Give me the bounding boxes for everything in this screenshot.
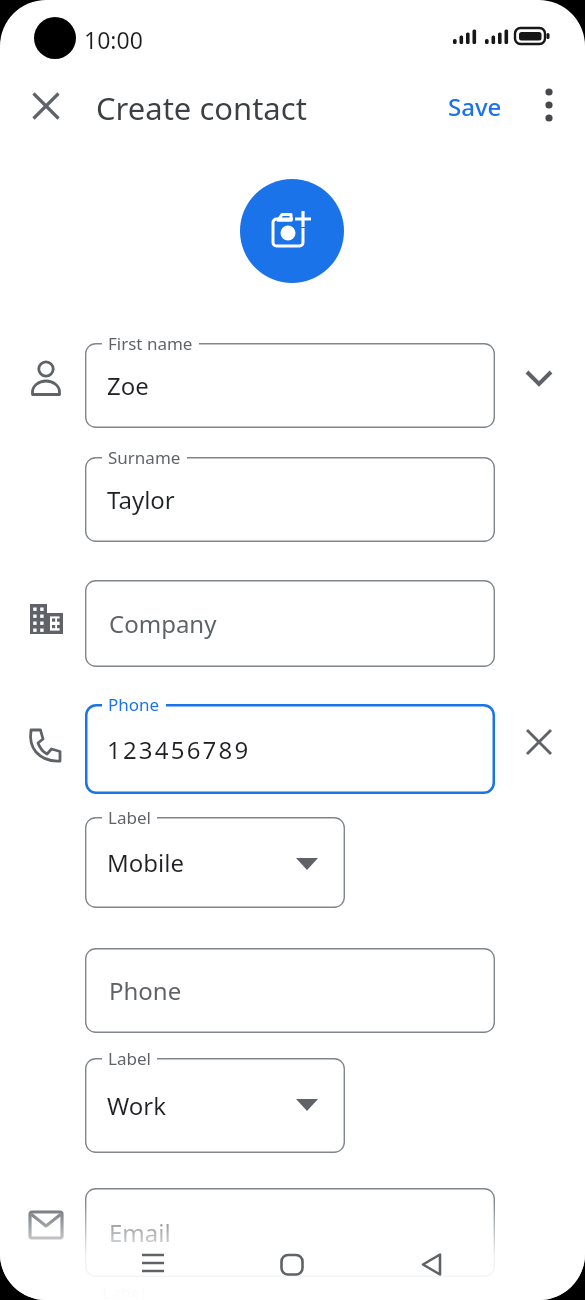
button[interactable]: Save bbox=[448, 90, 502, 123]
staticText: Email bbox=[109, 1216, 171, 1249]
staticText: 10:00 bbox=[84, 24, 143, 55]
button[interactable] bbox=[138, 1249, 168, 1279]
button[interactable] bbox=[28, 88, 64, 124]
staticText: Company bbox=[109, 607, 217, 640]
staticText: Label bbox=[108, 806, 151, 829]
button[interactable]: 123456789 bbox=[85, 704, 495, 794]
staticText: Mobile bbox=[107, 846, 184, 879]
staticText: Phone bbox=[109, 974, 182, 1007]
button[interactable]: Phone bbox=[85, 948, 495, 1033]
staticText: Surname bbox=[108, 446, 181, 469]
button[interactable]: Mobile bbox=[85, 817, 345, 908]
staticText: Zoe bbox=[107, 369, 149, 402]
button[interactable] bbox=[534, 88, 564, 118]
button[interactable] bbox=[416, 1249, 446, 1279]
button[interactable] bbox=[519, 722, 559, 762]
button[interactable]: Work bbox=[85, 1058, 345, 1153]
staticText: Label bbox=[108, 1047, 151, 1070]
staticText: Work bbox=[107, 1089, 167, 1122]
staticText: Phone bbox=[108, 693, 160, 716]
button[interactable]: Taylor bbox=[85, 457, 495, 542]
button[interactable]: Email bbox=[85, 1188, 495, 1277]
button[interactable]: Company bbox=[85, 580, 495, 667]
button[interactable] bbox=[519, 358, 559, 398]
button[interactable] bbox=[277, 1249, 307, 1279]
button[interactable] bbox=[240, 179, 344, 283]
staticText: Create contact bbox=[96, 87, 307, 129]
button[interactable]: Zoe bbox=[85, 343, 495, 428]
staticText: Save bbox=[448, 90, 502, 123]
staticText: Taylor bbox=[107, 483, 175, 516]
staticText: First name bbox=[108, 332, 193, 355]
staticText: 123456789 bbox=[107, 733, 251, 766]
